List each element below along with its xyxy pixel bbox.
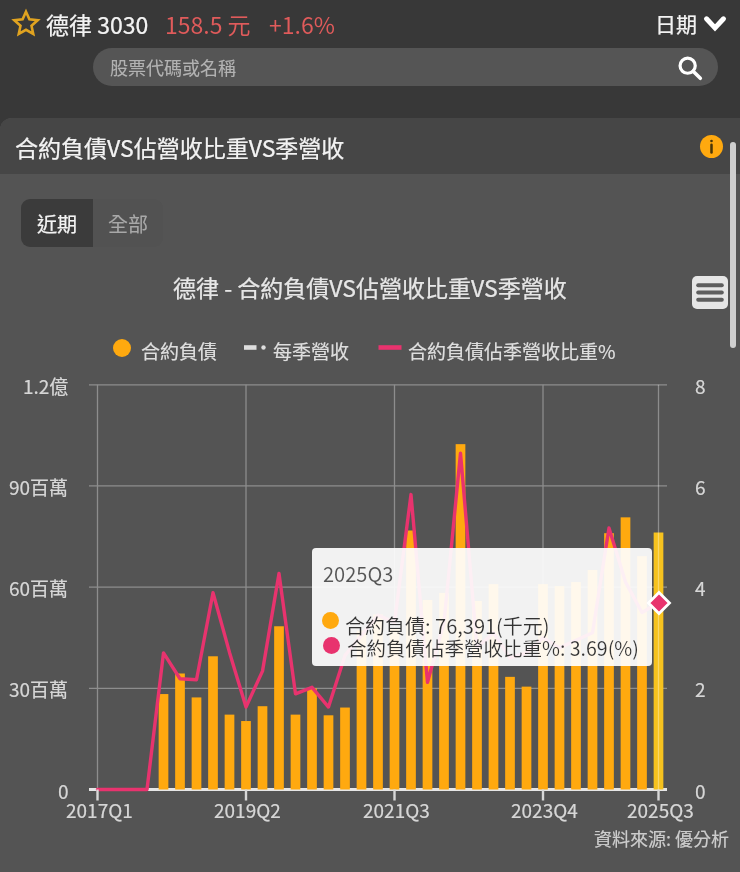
staticText: 1.2億 [23, 372, 69, 400]
button[interactable]: Favorite [12, 9, 40, 37]
staticText: 合約負債VS佔營收比重VS季營收 [15, 130, 345, 163]
button[interactable]: Chart menu [692, 276, 728, 309]
button[interactable]: 全部 [93, 199, 163, 247]
staticText: 6 [695, 473, 706, 501]
staticText: 0 [58, 777, 69, 805]
button[interactable]: 日期 [655, 8, 726, 38]
staticText: 日期 [655, 8, 697, 38]
staticText: 30百萬 [9, 675, 69, 703]
staticText: 合約負債佔季營收比重%: 3.69(%) [347, 633, 639, 661]
staticText: 2017Q1 [66, 796, 133, 824]
button[interactable]: Info [700, 135, 723, 158]
staticText: 2023Q4 [511, 796, 578, 824]
staticText: 每季營收 [273, 337, 350, 365]
staticText: 8 [695, 372, 706, 400]
staticText: 合約負債佔季營收比重% [408, 337, 616, 365]
staticText: 股票代碼或名稱 [110, 54, 236, 80]
staticText: 資料來源: 優分析 [594, 825, 730, 851]
staticText: 60百萬 [9, 574, 69, 602]
staticText: 0 [695, 777, 706, 805]
staticText: 全部 [108, 209, 148, 238]
staticText: 4 [695, 574, 706, 602]
staticText: 合約負債: 76,391(千元) [345, 611, 550, 640]
staticText: 2025Q3 [323, 559, 394, 588]
staticText: 2019Q2 [214, 796, 281, 824]
button[interactable]: 股票代碼或名稱 [93, 48, 718, 86]
staticText: 合約負債 [141, 337, 218, 365]
staticText: 德律 - 合約負債VS佔營收比重VS季營收 [173, 270, 567, 300]
staticText: 158.5 元 [165, 7, 251, 40]
staticText: +1.6% [269, 7, 335, 40]
staticText: 2025Q3 [627, 796, 694, 824]
staticText: 90百萬 [9, 473, 69, 501]
staticText: 德律 3030 [46, 7, 149, 40]
staticText: 2 [695, 675, 706, 703]
staticText: 2021Q3 [363, 796, 430, 824]
button[interactable]: 合約負債VS佔營收比重VS季營收 [0, 118, 740, 174]
button[interactable]: 近期 [21, 199, 93, 247]
staticText: 近期 [37, 209, 77, 238]
